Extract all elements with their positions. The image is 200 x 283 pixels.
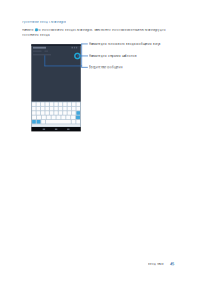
staticText: положения ввода. [22,33,50,36]
staticText: Введите текст сообщения [89,65,123,69]
staticText: Нажмите для открытия шаблонов [89,54,137,58]
staticText: Ввод текста [148,262,163,265]
staticText: 45 [170,261,174,266]
staticText: Нажмите для использования ввода с клавиа… [22,28,166,31]
staticText: Уровневый ввод с клавиатуры [22,20,66,23]
staticText: Нажмите для голосового ввода сообщения в… [89,42,160,46]
